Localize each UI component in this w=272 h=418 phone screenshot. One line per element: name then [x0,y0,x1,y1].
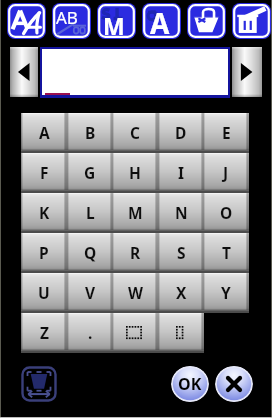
button[interactable]: Cancel [215,366,253,402]
staticText: D [175,122,187,143]
staticText: M [128,202,143,223]
staticText: R [130,242,141,263]
staticText: X [176,282,187,303]
button[interactable]: Y [203,273,249,313]
staticText: AB [56,6,78,29]
button[interactable]: X [158,273,204,313]
button[interactable]: Previous [10,47,38,97]
button[interactable]: Font [6,2,47,40]
button[interactable]: R [112,233,158,273]
staticText: Z [40,322,49,343]
staticText: P [39,242,49,263]
staticText: S [177,242,186,263]
staticText: T [222,242,231,263]
staticText: E [222,122,231,143]
button[interactable]: Space [112,313,158,353]
staticText: Q [84,242,97,263]
button[interactable]: T [203,233,249,273]
staticText: OK [178,373,202,395]
button[interactable]: S [158,233,204,273]
button[interactable]: N [158,193,204,233]
button[interactable]: L [67,193,113,233]
button[interactable]: V [67,273,113,313]
button[interactable]: O [203,193,249,233]
button[interactable]: Z [21,313,67,353]
button[interactable]: Alignment [51,2,92,40]
staticText: M [103,10,125,41]
staticText: B [85,122,96,143]
button[interactable]: U [21,273,67,313]
staticText: A [150,4,170,42]
staticText: A [39,122,50,143]
button[interactable]: Next [232,47,262,97]
staticText: . [88,322,93,343]
button[interactable]: OK [171,366,209,402]
button[interactable]: J [203,153,249,193]
staticText: J [223,162,229,183]
staticText: W [128,282,143,303]
button[interactable]: M [112,193,158,233]
button[interactable]: . [67,313,113,353]
button[interactable]: W [112,273,158,313]
button[interactable]: A [21,113,67,153]
button[interactable]: K [21,193,67,233]
button[interactable]: Size [96,2,137,40]
staticText: K [39,202,50,223]
button[interactable]: G [67,153,113,193]
staticText: V [85,282,96,303]
button[interactable]: Rotate [141,2,182,40]
button[interactable]: E [203,113,249,153]
staticText: O [220,202,233,223]
button[interactable]: Delete [231,2,272,40]
button[interactable]: H [112,153,158,193]
staticText: U [38,282,50,303]
staticText: L [86,202,95,223]
staticText: H [129,162,141,183]
button[interactable]: P [21,233,67,273]
staticText: F [40,162,49,183]
staticText: Y [221,282,231,303]
staticText: C [130,122,140,143]
button[interactable]: C [112,113,158,153]
button[interactable]: D [158,113,204,153]
staticText: G [84,162,96,183]
button[interactable]: Narrow space [158,313,204,353]
button[interactable]: Q [67,233,113,273]
button[interactable]: F [21,153,67,193]
button[interactable]: B [67,113,113,153]
staticText: I [178,162,185,183]
button[interactable]: Colors [186,2,227,40]
button[interactable]: Resize [21,366,57,402]
staticText: N [175,202,188,223]
button[interactable]: I [158,153,204,193]
